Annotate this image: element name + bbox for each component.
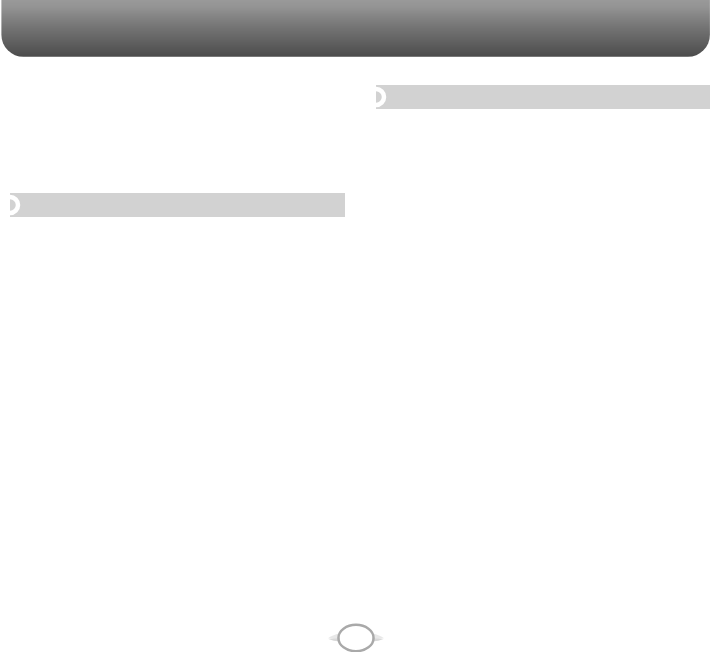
button[interactable]: Contact avatar: [0, 194, 21, 216]
button[interactable]: More options: [659, 5, 707, 53]
button[interactable]: [10, 193, 345, 217]
button[interactable]: Navigate up: [4, 5, 52, 53]
button[interactable]: [376, 85, 710, 109]
button[interactable]: Contact avatar: [365, 86, 387, 108]
button[interactable]: Send: [324, 618, 388, 652]
